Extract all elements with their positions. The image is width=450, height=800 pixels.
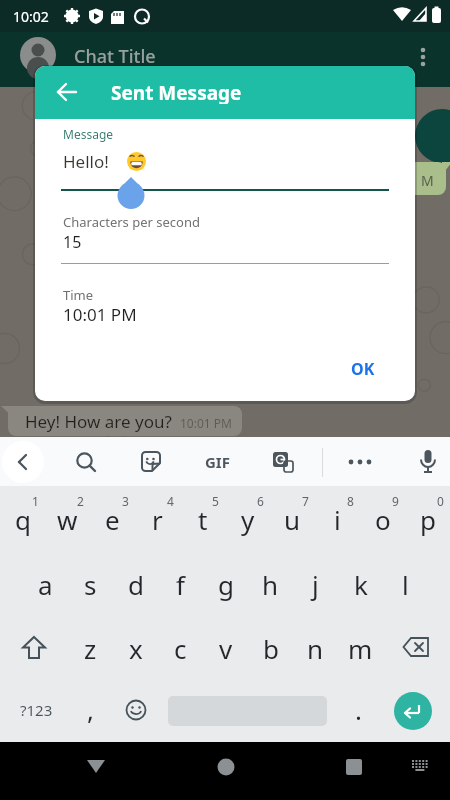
button[interactable]: d	[113, 564, 158, 604]
button[interactable]: a	[23, 564, 68, 604]
button[interactable]	[417, 44, 429, 70]
staticText: g	[218, 567, 234, 602]
button[interactable]: c	[158, 628, 203, 668]
staticText: 6	[257, 493, 264, 509]
staticText: t	[198, 502, 208, 537]
staticText: GIF	[205, 452, 230, 472]
staticText: f	[176, 567, 185, 602]
staticText: Time	[63, 286, 94, 304]
staticText: 10:01 PM	[180, 415, 232, 431]
staticText: m	[348, 631, 373, 666]
staticText: 5	[212, 493, 219, 509]
staticText: Chat Title	[74, 44, 156, 68]
staticText: Characters per second	[63, 213, 200, 231]
button[interactable]: ?123	[6, 690, 66, 730]
staticText: 3	[122, 493, 129, 509]
staticText: b	[263, 631, 279, 666]
staticText: e	[105, 502, 120, 537]
staticText: ?123	[20, 700, 53, 720]
button[interactable]: q	[0, 499, 45, 539]
staticText: OK	[351, 358, 375, 380]
staticText: a	[38, 567, 53, 602]
staticText: p	[420, 502, 436, 537]
button[interactable]: m	[338, 628, 383, 668]
staticText: q	[15, 502, 31, 537]
staticText: M	[421, 171, 434, 190]
staticText: j	[312, 567, 319, 602]
button[interactable]	[402, 636, 430, 660]
button[interactable]: l	[383, 564, 428, 604]
staticText: 4	[167, 493, 174, 509]
button[interactable]: .	[338, 689, 378, 729]
button[interactable]: h	[248, 564, 293, 604]
button[interactable]: v	[203, 628, 248, 668]
staticText: v	[219, 631, 233, 666]
button[interactable]: b	[248, 628, 293, 668]
button[interactable]: n	[293, 628, 338, 668]
staticText: d	[128, 567, 144, 602]
staticText: 10:01 PM	[63, 303, 137, 326]
staticText: s	[84, 567, 97, 602]
button[interactable]	[412, 760, 429, 774]
button[interactable]: GIF	[192, 450, 242, 474]
button[interactable]: x	[113, 628, 158, 668]
button[interactable]: OK	[333, 351, 393, 387]
button[interactable]: t	[180, 499, 225, 539]
button[interactable]: j	[293, 564, 338, 604]
staticText: Sent Message	[111, 80, 242, 104]
button[interactable]	[20, 634, 48, 662]
staticText: u	[284, 502, 301, 537]
staticText: x	[129, 631, 143, 666]
button[interactable]: w	[45, 499, 90, 539]
staticText: 0	[437, 493, 444, 509]
button[interactable]	[394, 692, 432, 730]
staticText: c	[174, 631, 187, 666]
staticText: l	[402, 567, 409, 602]
staticText: w	[57, 502, 78, 537]
button[interactable]: k	[338, 564, 383, 604]
button[interactable]: i	[315, 499, 360, 539]
button[interactable]	[86, 758, 106, 776]
button[interactable]: r	[135, 499, 180, 539]
staticText: .	[355, 692, 362, 727]
button[interactable]	[416, 449, 440, 475]
staticText: 10:02	[13, 7, 49, 26]
staticText: k	[354, 567, 368, 602]
button[interactable]: p	[405, 499, 450, 539]
staticText: 8	[347, 493, 354, 509]
staticText: n	[307, 631, 324, 666]
staticText: Message	[63, 126, 114, 142]
button[interactable]	[74, 450, 98, 474]
staticText: 7	[302, 493, 309, 509]
button[interactable]: f	[158, 564, 203, 604]
button[interactable]	[125, 699, 147, 721]
button[interactable]	[271, 450, 295, 474]
staticText: z	[84, 631, 97, 666]
staticText: r	[152, 502, 163, 537]
button[interactable]	[348, 450, 372, 474]
button[interactable]: g	[203, 564, 248, 604]
staticText: Hey! How are you?	[25, 410, 172, 433]
button[interactable]: s	[68, 564, 113, 604]
staticText: 9	[392, 493, 399, 509]
button[interactable]: y	[225, 499, 270, 539]
staticText: y	[241, 502, 255, 537]
button[interactable]	[217, 758, 235, 776]
staticText: h	[262, 567, 279, 602]
button[interactable]	[55, 80, 79, 104]
staticText: Hello!	[63, 150, 109, 173]
button[interactable]: z	[68, 628, 113, 668]
button[interactable]: o	[360, 499, 405, 539]
button[interactable]: u	[270, 499, 315, 539]
button[interactable]	[346, 759, 362, 775]
staticText: 15	[63, 231, 82, 253]
staticText: o	[375, 502, 391, 537]
button[interactable]	[2, 441, 44, 483]
staticText: 1	[32, 493, 39, 509]
staticText: 2	[77, 493, 84, 509]
button[interactable]: ,	[70, 689, 110, 729]
button[interactable]: e	[90, 499, 135, 539]
button[interactable]	[139, 450, 163, 474]
staticText: i	[334, 502, 341, 537]
